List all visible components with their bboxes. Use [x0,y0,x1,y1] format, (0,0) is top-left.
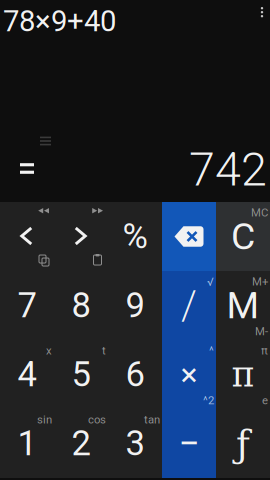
button[interactable]: M [216,271,270,340]
button[interactable]: C [216,202,270,271]
staticText: e [262,394,268,407]
staticText: tan [144,413,160,426]
staticText: × [180,356,197,393]
button[interactable] [0,202,54,271]
staticText: 4 [17,354,36,395]
staticText: C [231,215,255,258]
staticText: − [178,422,199,465]
staticText: 6 [125,354,144,395]
button[interactable]: % [108,202,162,271]
button[interactable]: 5 [54,340,108,409]
staticText: / [181,282,197,329]
button[interactable]: 1 [0,409,54,478]
staticText: 742 [189,142,267,197]
staticText: cos [88,413,106,426]
button[interactable]: 2 [54,409,108,478]
staticText: 7 [17,285,36,326]
staticText: 9 [125,285,144,326]
button[interactable]: 6 [108,340,162,409]
button[interactable]: More options [254,4,270,29]
button[interactable]: ƒ [216,409,270,478]
staticText: 5 [71,354,90,395]
staticText: √ [207,275,214,288]
staticText: π [231,354,254,395]
staticText: MC [251,206,268,219]
staticText: sin [37,413,52,426]
staticText: M- [255,325,268,338]
staticText: M+ [252,275,268,288]
staticText: 78×9+40 [3,4,116,38]
button[interactable] [54,202,108,271]
staticText: M [226,284,259,327]
button[interactable]: 8 [54,271,108,340]
staticText: % [122,216,147,257]
staticText: t [102,344,106,357]
button[interactable]: 9 [108,271,162,340]
staticText: 2 [71,423,90,464]
staticText: π [261,344,268,357]
staticText: x [46,344,52,357]
button[interactable]: 7 [0,271,54,340]
staticText: ƒ [236,422,250,465]
button[interactable]: 3 [108,409,162,478]
button[interactable] [162,202,216,271]
staticText: 8 [71,285,90,326]
button[interactable]: × [162,340,216,409]
button[interactable]: / [162,271,216,340]
button[interactable]: π [216,340,270,409]
button[interactable]: − [162,409,216,478]
button[interactable]: 4 [0,340,54,409]
staticText: 1 [17,423,36,464]
staticText: 3 [125,423,144,464]
staticText: ^ [209,344,214,357]
staticText: ^2 [203,394,214,407]
